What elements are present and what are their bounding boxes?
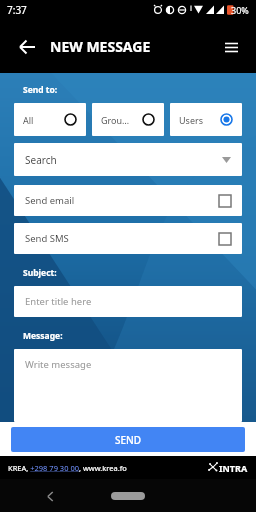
button[interactable]: Menu: [214, 30, 248, 64]
staticText: Subject:: [23, 267, 57, 279]
button[interactable]: Users: [170, 103, 242, 136]
button[interactable]: Search: [14, 143, 242, 176]
button[interactable]: Home: [106, 486, 150, 506]
staticText: Send to:: [23, 84, 58, 96]
staticText: Grou…: [101, 114, 130, 126]
staticText: KREA, +298 79 30 00, www.krea.fo: [8, 463, 127, 473]
staticText: SEND: [115, 433, 142, 447]
button[interactable]: Back: [38, 484, 62, 508]
button[interactable]: SEND: [11, 427, 245, 452]
staticText: 30%: [231, 4, 249, 16]
staticText: All: [23, 114, 34, 126]
staticText: Send email: [25, 194, 75, 207]
button[interactable]: Enter title here: [14, 286, 242, 317]
staticText: NEW MESSAGE: [50, 37, 151, 56]
button[interactable]: Grou…: [92, 103, 164, 136]
button[interactable]: Send email: [14, 185, 242, 216]
button[interactable]: Back: [10, 30, 44, 64]
staticText: Write message: [25, 358, 92, 371]
staticText: Message:: [23, 330, 63, 342]
staticText: INTRA: [219, 462, 248, 474]
staticText: Send SMS: [25, 232, 69, 245]
button[interactable]: Write message: [14, 349, 242, 422]
staticText: 7:37: [7, 3, 27, 17]
staticText: Users: [179, 114, 203, 126]
staticText: Enter title here: [25, 295, 92, 308]
staticText: Search: [25, 153, 57, 167]
button[interactable]: All: [14, 103, 86, 136]
button[interactable]: Send SMS: [14, 223, 242, 254]
